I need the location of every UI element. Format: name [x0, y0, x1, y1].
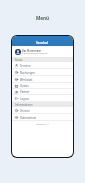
button[interactable]: Bas Blutermann — [12, 46, 73, 57]
staticText: Werkstatt — [20, 78, 33, 82]
button[interactable]: Partner — [12, 89, 73, 95]
staticText: Partner — [20, 90, 30, 94]
button[interactable]: Werkstatt — [12, 76, 73, 83]
button[interactable]: Version — [12, 107, 73, 114]
button[interactable]: Option — [12, 83, 73, 89]
staticText: Konto — [15, 58, 23, 61]
staticText: Version 1.0.1 — [12, 123, 73, 126]
staticText: Buchungen — [20, 71, 35, 75]
staticText: Informationen — [15, 103, 33, 106]
button[interactable]: Buchungen — [12, 69, 73, 76]
staticText: Datenschutz — [20, 116, 37, 120]
staticText: Menü — [0, 15, 85, 21]
staticText: Version — [20, 109, 30, 113]
staticText: Option — [20, 84, 29, 88]
staticText: Hansebad — [36, 41, 49, 44]
staticText: Bas Blutermann — [22, 49, 42, 52]
button[interactable]: Datenschutz — [12, 114, 73, 121]
staticText: b.blutermann@hansebad.de — [22, 52, 48, 55]
staticText: Termine — [20, 64, 31, 68]
button[interactable]: Termine — [12, 62, 73, 69]
staticText: Logout — [20, 97, 30, 101]
button[interactable]: Logout — [12, 95, 73, 102]
